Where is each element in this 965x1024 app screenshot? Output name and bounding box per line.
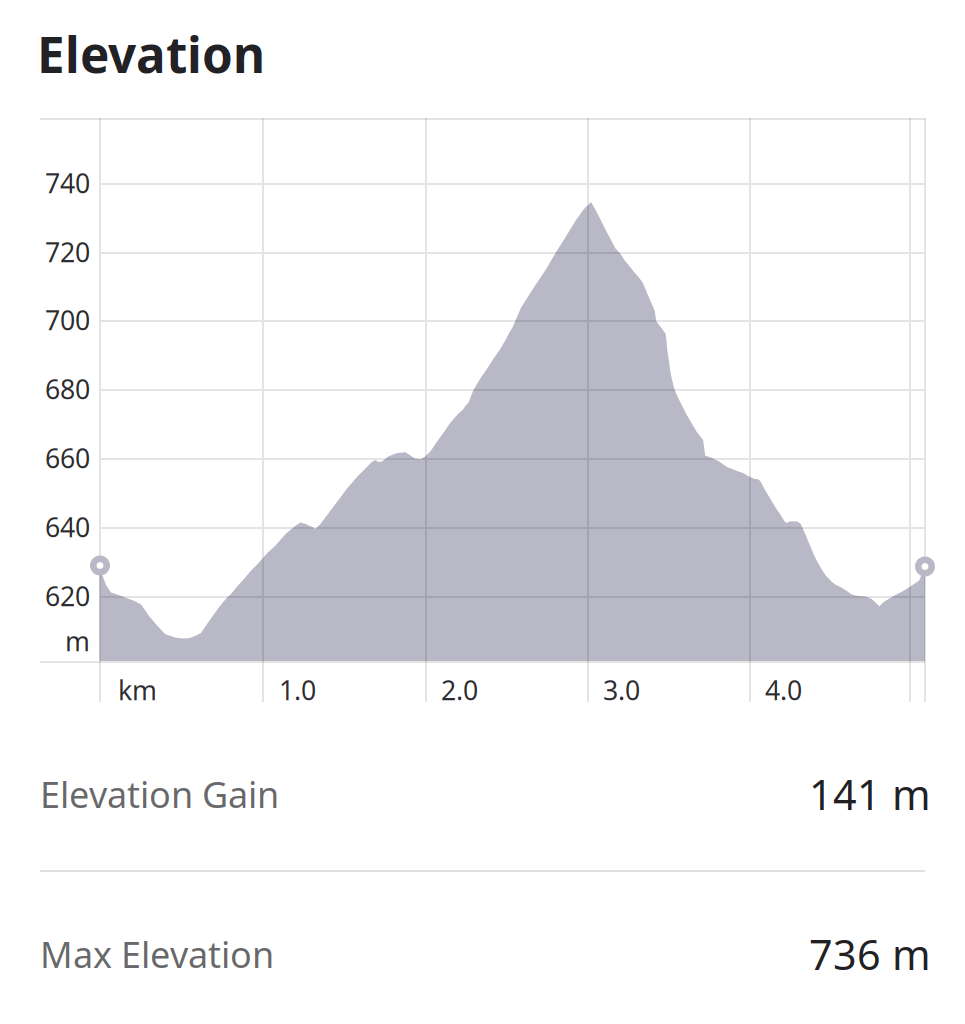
staticText: 3.0	[603, 672, 640, 708]
staticText: km	[118, 672, 157, 708]
staticText: 660	[45, 440, 90, 476]
staticText: 640	[45, 509, 90, 545]
button[interactable]: Elevation Gain	[40, 755, 931, 833]
staticText: 2.0	[441, 672, 478, 708]
staticText: 4.0	[765, 672, 802, 708]
staticText: 720	[45, 234, 90, 270]
staticText: 740	[45, 165, 90, 201]
staticText: 1.0	[279, 672, 316, 708]
button[interactable]: Max Elevation	[40, 915, 931, 993]
staticText: 141 m	[809, 767, 931, 821]
staticText: Elevation	[37, 21, 265, 86]
staticText: 620	[45, 578, 90, 614]
staticText: 700	[45, 302, 90, 338]
staticText: 736 m	[809, 927, 931, 981]
staticText: Elevation Gain	[40, 770, 279, 818]
staticText: 680	[45, 371, 90, 407]
staticText: Max Elevation	[40, 930, 274, 978]
staticText: m	[65, 623, 90, 659]
